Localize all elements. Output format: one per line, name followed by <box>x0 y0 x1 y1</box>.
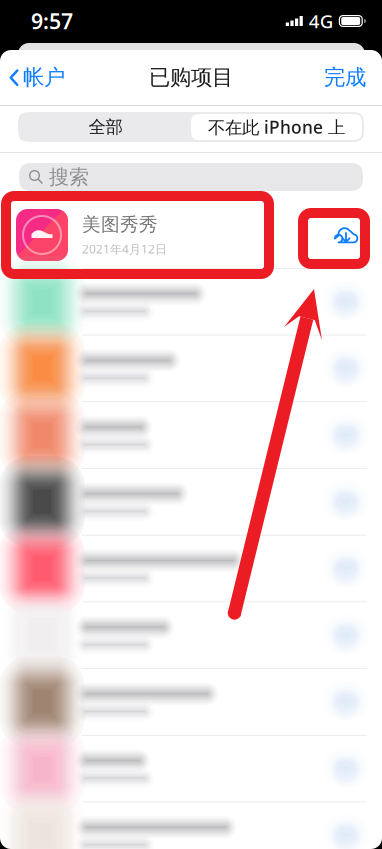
button[interactable]: 帐户 <box>0 56 73 99</box>
button[interactable] <box>0 469 382 535</box>
button[interactable] <box>0 402 382 469</box>
button[interactable] <box>0 535 382 602</box>
button[interactable] <box>0 802 382 849</box>
button[interactable]: 全部 <box>20 114 191 140</box>
staticText: 不在此 iPhone 上 <box>208 115 345 138</box>
button[interactable]: 美图秀秀 <box>0 202 382 269</box>
staticText: 美图秀秀 <box>82 213 158 236</box>
staticText: 全部 <box>88 116 122 138</box>
staticText: 9:57 <box>31 7 73 35</box>
staticText: 4G <box>309 9 334 33</box>
button[interactable] <box>0 736 382 802</box>
button[interactable] <box>0 669 382 736</box>
button[interactable] <box>0 602 382 669</box>
button[interactable]: 完成 <box>316 56 382 99</box>
staticText: 已购项目 <box>149 64 233 91</box>
button[interactable]: 不在此 iPhone 上 <box>191 114 362 140</box>
staticText: 完成 <box>324 64 366 91</box>
button[interactable] <box>0 269 382 335</box>
staticText: 搜索 <box>49 165 89 189</box>
staticText: 2021年4月12日 <box>82 241 167 257</box>
button[interactable] <box>0 335 382 402</box>
staticText: 帐户 <box>23 64 65 91</box>
